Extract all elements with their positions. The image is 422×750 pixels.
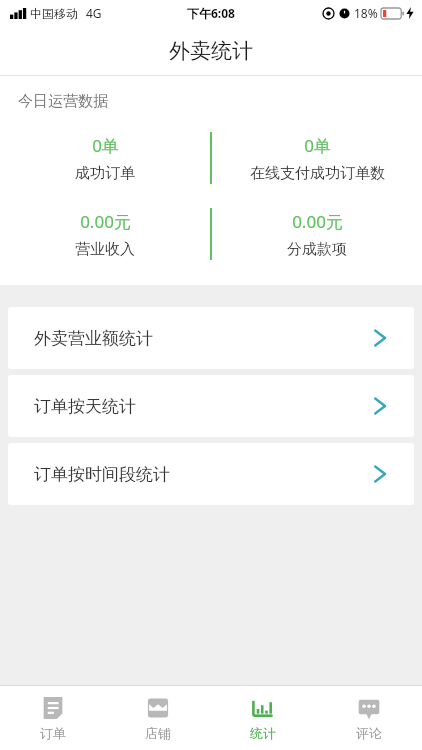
- staticText: 订单按时间段统计: [34, 464, 373, 485]
- staticText: 18%: [354, 5, 378, 21]
- button[interactable]: 统计: [210, 686, 316, 750]
- button[interactable]: 订单: [0, 686, 105, 750]
- staticText: 订单按天统计: [34, 396, 373, 417]
- staticText: 中国移动: [30, 6, 78, 21]
- other: 店铺: [146, 696, 170, 720]
- staticText: 0.00元: [292, 210, 343, 233]
- staticText: 0单: [304, 134, 331, 157]
- button[interactable]: 外卖营业额统计: [8, 307, 414, 369]
- button[interactable]: 店铺: [105, 686, 210, 750]
- staticText: 4G: [86, 5, 102, 21]
- button[interactable]: 订单按天统计: [8, 375, 414, 437]
- staticText: 外卖营业额统计: [34, 328, 373, 349]
- staticText: 0.00元: [80, 210, 131, 233]
- staticText: 分成款项: [287, 240, 347, 259]
- staticText: 在线支付成功订单数: [250, 164, 385, 183]
- staticText: 今日运营数据: [18, 92, 108, 111]
- staticText: 店铺: [145, 725, 171, 741]
- staticText: 评论: [356, 725, 382, 741]
- button[interactable]: 评论: [316, 686, 422, 750]
- other: 统计: [251, 696, 275, 720]
- other: 评论: [357, 696, 381, 720]
- staticText: 成功订单: [75, 164, 135, 183]
- staticText: 营业收入: [75, 240, 135, 259]
- staticText: 统计: [250, 725, 276, 741]
- staticText: 外卖统计: [169, 38, 253, 64]
- button[interactable]: 订单按时间段统计: [8, 443, 414, 505]
- staticText: 订单: [40, 725, 66, 741]
- staticText: 0单: [92, 134, 119, 157]
- staticText: 下午6:08: [187, 5, 235, 21]
- other: 订单: [41, 696, 65, 720]
